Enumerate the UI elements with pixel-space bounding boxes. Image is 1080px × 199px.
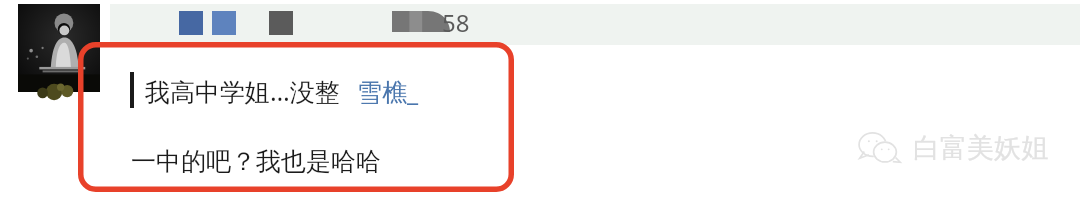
staticText: 白富美妖姐 bbox=[913, 131, 1048, 165]
button[interactable]: 一中的吧？我也是哈哈 bbox=[131, 146, 381, 177]
button[interactable]: Video thumbnail bbox=[18, 4, 100, 92]
button[interactable]: WeChat bbox=[856, 131, 1048, 165]
other: WeChat bbox=[856, 131, 902, 165]
staticText: 一中的吧？我也是哈哈 bbox=[131, 146, 381, 177]
staticText: 雪樵_ bbox=[357, 74, 419, 108]
staticText: 我高中学姐…没整 bbox=[145, 74, 340, 108]
staticText: 58 bbox=[442, 6, 470, 39]
button[interactable]: 我高中学姐…没整 bbox=[145, 74, 419, 108]
